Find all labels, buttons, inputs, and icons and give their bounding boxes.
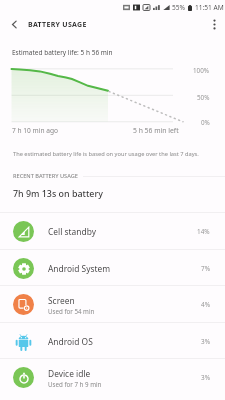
staticText: Android OS <box>48 336 93 347</box>
staticText: 3% <box>201 337 210 346</box>
staticText: 7 h 10 min ago <box>12 126 58 135</box>
staticText: 4% <box>201 300 210 309</box>
staticText: 14% <box>197 227 210 236</box>
staticText: BATTERY USAGE <box>28 20 87 30</box>
staticText: 7h 9m 13s on battery <box>13 187 103 199</box>
button[interactable]: Cell standby <box>0 213 225 250</box>
staticText: 3% <box>201 373 210 382</box>
staticText: Used for 7 h 9 min <box>48 380 102 388</box>
staticText: 11:51 AM <box>195 3 224 12</box>
staticText: Device idle <box>48 368 91 379</box>
staticText: 55% <box>172 3 186 12</box>
staticText: RECENT BATTERY USAGE <box>13 172 78 180</box>
button[interactable]: Screen <box>0 286 225 323</box>
button[interactable]: Device idle <box>0 359 225 396</box>
staticText: 100% <box>193 66 210 75</box>
button[interactable]: Navigate up <box>0 11 28 38</box>
staticText: Screen <box>48 295 75 306</box>
staticText: Android System <box>48 263 111 274</box>
staticText: 5 h 56 min left <box>133 126 179 135</box>
staticText: Cell standby <box>48 226 96 237</box>
button[interactable]: Android OS <box>0 323 225 360</box>
staticText: Used for 54 min <box>48 307 95 315</box>
staticText: 0% <box>201 118 210 127</box>
button[interactable]: More options <box>203 11 225 38</box>
button[interactable]: Android System <box>0 250 225 287</box>
staticText: 7% <box>201 264 210 273</box>
staticText: Estimated battery life: 5 h 56 min <box>12 48 113 57</box>
staticText: The estimated battery life is based on y… <box>13 150 199 158</box>
staticText: 50% <box>197 93 210 102</box>
